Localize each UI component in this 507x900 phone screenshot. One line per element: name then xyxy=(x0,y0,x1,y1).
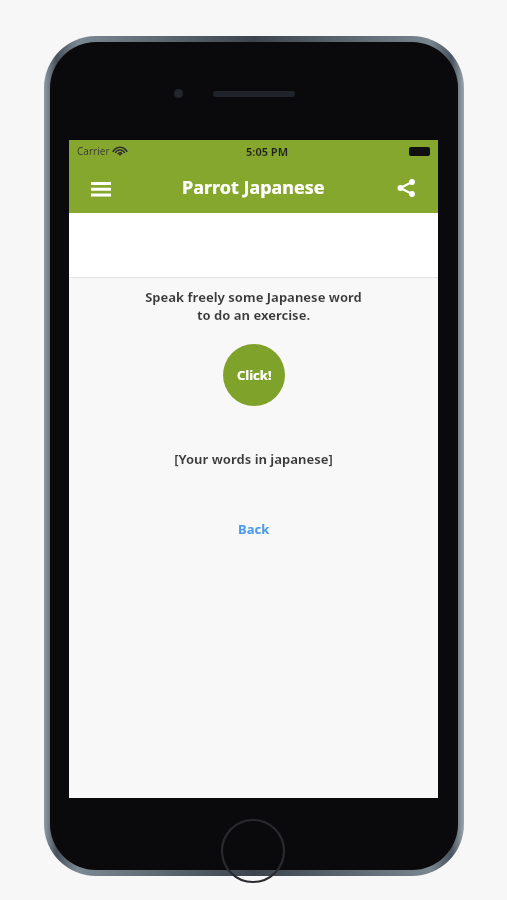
button[interactable]: Back xyxy=(226,516,282,542)
staticText: Speak freely some Japanese word to do an… xyxy=(145,288,362,324)
staticText: Click! xyxy=(237,366,272,384)
staticText: 5:05 PM xyxy=(246,144,289,159)
button[interactable]: Click! xyxy=(223,344,285,406)
staticText: Parrot Japanese xyxy=(182,175,325,200)
button[interactable]: Share xyxy=(384,166,428,210)
button[interactable]: Menu xyxy=(79,166,123,210)
staticText: Back xyxy=(238,520,270,538)
staticText: Carrier xyxy=(77,144,110,158)
staticText: [Your words in japanese] xyxy=(174,450,333,468)
